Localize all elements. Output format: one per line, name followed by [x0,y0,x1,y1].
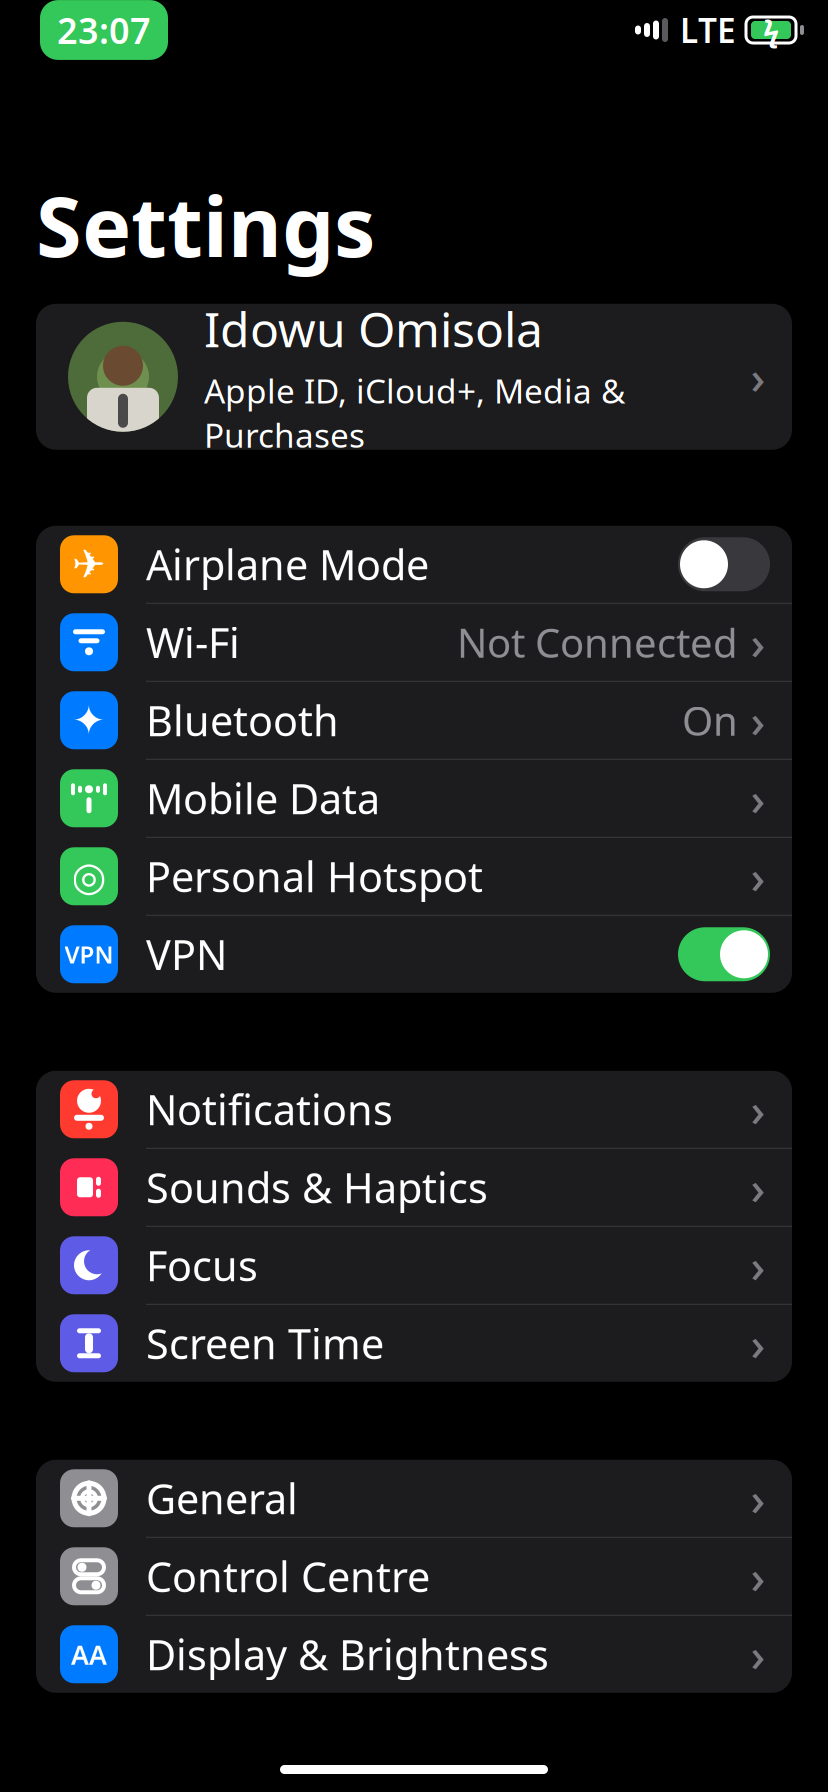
staticText: Screen Time [146,1316,384,1371]
staticText: Focus [146,1238,258,1293]
staticText: › [750,1235,765,1295]
staticText: On [682,694,738,747]
staticText: Wi-Fi [146,615,240,670]
staticText: ✦ [72,698,106,743]
staticText: 23:07 [57,6,151,54]
staticText: ✈ [72,542,106,587]
staticText: › [750,768,765,828]
button[interactable]: Mobile Data [36,760,792,837]
staticText: › [750,690,765,750]
staticText: ϟ [763,10,779,49]
button[interactable]: ◎ [36,838,792,915]
staticText: Airplane Mode [146,537,429,592]
staticText: Personal Hotspot [146,849,483,904]
staticText: LTE [680,8,736,52]
staticText: VPN [64,938,113,970]
button[interactable]: Idowu Omisola [0,304,828,450]
button[interactable]: Notifications [36,1071,792,1148]
button[interactable]: Wi-Fi [36,604,792,681]
button[interactable]: VPN [36,916,792,993]
staticText: AA [71,1637,107,1672]
staticText: Not Connected [457,616,738,669]
staticText: › [750,612,765,672]
button[interactable]: General [36,1460,792,1537]
button[interactable]: Screen Time [36,1305,792,1382]
staticText: Apple ID, iCloud+, Media & Purchases [204,368,625,457]
staticText: Settings [36,170,375,280]
staticText: Sounds & Haptics [146,1160,488,1215]
staticText: Bluetooth [146,693,339,748]
button[interactable]: AA [36,1616,792,1693]
staticText: › [750,1157,765,1217]
button[interactable]: ✦ [36,682,792,759]
staticText: VPN [146,927,227,982]
staticText: Notifications [146,1082,393,1137]
staticText: General [146,1471,298,1526]
button[interactable]: Focus [36,1227,792,1304]
staticText: Idowu Omisola [204,297,543,360]
staticText: › [750,1468,765,1528]
staticText: › [750,1546,765,1606]
staticText: › [750,1079,765,1139]
staticText: ◎ [71,854,106,899]
staticText: Display & Brightness [146,1627,549,1682]
staticText: Mobile Data [146,771,380,826]
button[interactable]: Control Centre [36,1538,792,1615]
staticText: › [750,347,765,407]
staticText: › [750,1624,765,1684]
staticText: › [750,846,765,906]
staticText: › [750,1313,765,1373]
button[interactable]: Sounds & Haptics [36,1149,792,1226]
button[interactable]: ✈ [36,526,792,603]
staticText: Control Centre [146,1549,430,1604]
